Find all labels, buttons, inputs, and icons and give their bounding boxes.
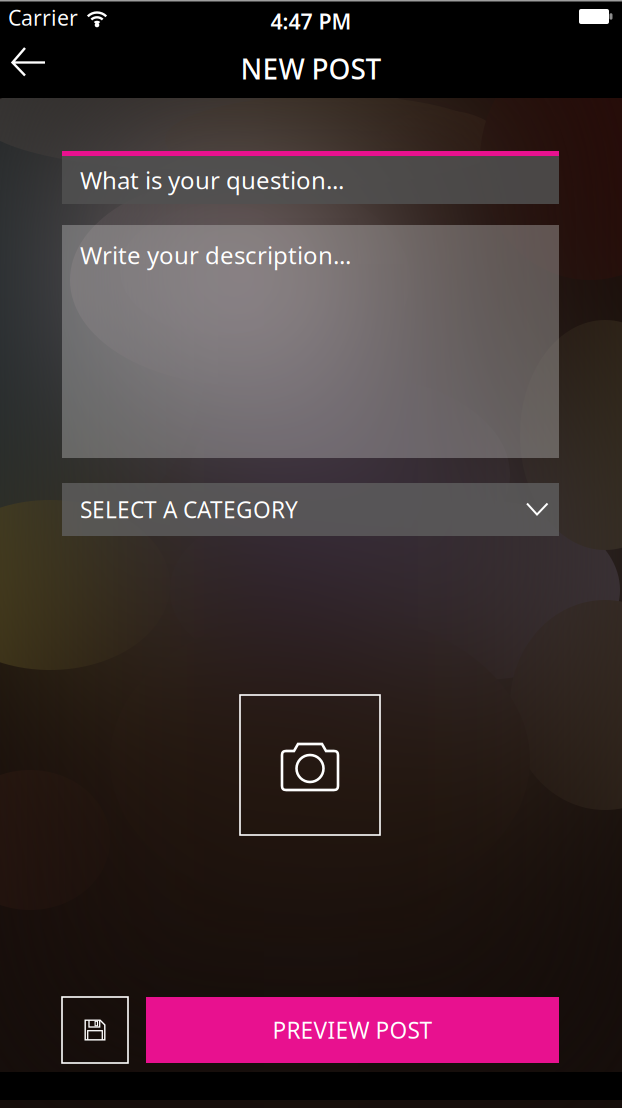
staticText: Carrier — [8, 3, 78, 32]
button[interactable]: Add photo — [240, 695, 380, 835]
staticText: Write your description... — [80, 239, 351, 271]
button[interactable]: Write your description... — [62, 225, 559, 458]
button[interactable]: Back — [0, 33, 56, 77]
button[interactable]: Save draft — [62, 997, 128, 1063]
staticText: 4:47 PM — [270, 7, 351, 35]
staticText: SELECT A CATEGORY — [80, 494, 298, 524]
staticText: What is your question... — [80, 164, 344, 196]
button[interactable]: SELECT A CATEGORY — [62, 483, 559, 536]
button[interactable]: What is your question... — [62, 151, 559, 204]
button[interactable]: PREVIEW POST — [146, 997, 559, 1063]
staticText: NEW POST — [240, 50, 381, 87]
staticText: PREVIEW POST — [272, 1015, 432, 1045]
